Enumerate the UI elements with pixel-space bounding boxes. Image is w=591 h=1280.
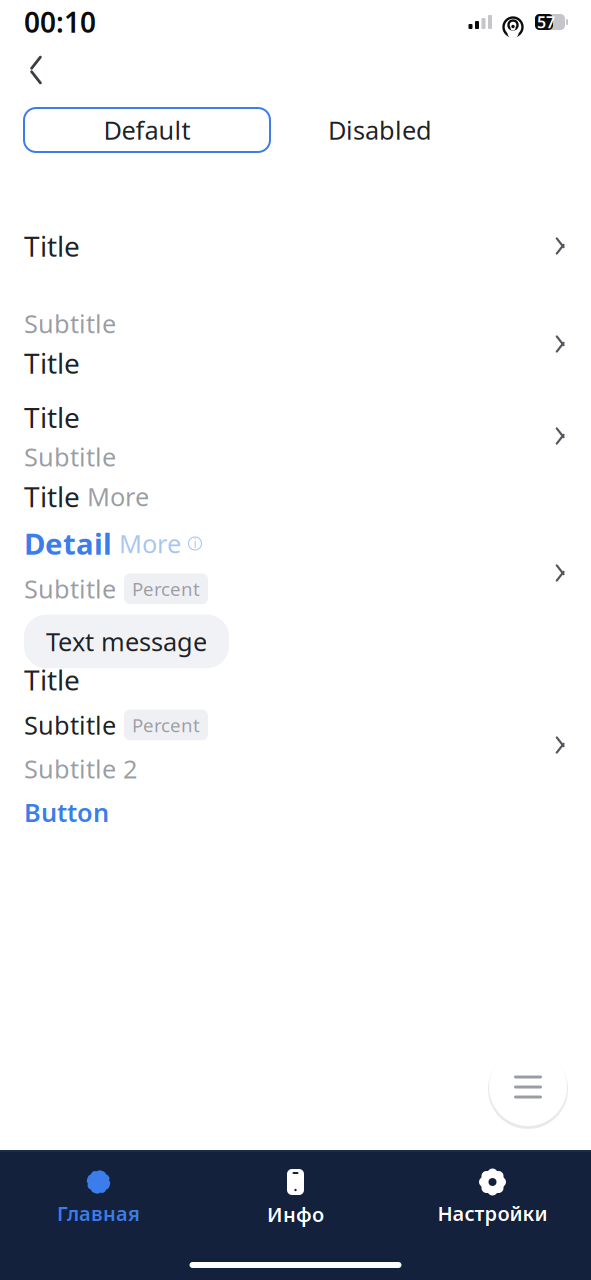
- staticText: Subtitle: [24, 572, 116, 605]
- staticText: Percent: [132, 576, 200, 601]
- staticText: Percent: [132, 713, 200, 737]
- staticText: Subtitle: [24, 440, 116, 473]
- staticText: Subtitle: [24, 708, 116, 742]
- staticText: i: [193, 535, 196, 551]
- button[interactable]: Subtitle: [0, 304, 591, 384]
- staticText: Button: [24, 795, 109, 829]
- button[interactable]: Настройки: [394, 1159, 591, 1237]
- button[interactable]: Menu: [487, 1046, 569, 1128]
- button[interactable]: Инфо: [197, 1158, 394, 1238]
- staticText: Title: [24, 399, 80, 436]
- staticText: Инфо: [267, 1201, 324, 1228]
- staticText: Title: [24, 227, 80, 265]
- staticText: Disabled: [328, 113, 432, 147]
- staticText: Главная: [57, 1200, 140, 1227]
- button[interactable]: Title: [0, 488, 591, 658]
- button[interactable]: Главная: [0, 1159, 197, 1237]
- button[interactable]: Title: [0, 670, 591, 820]
- staticText: Title: [24, 478, 80, 515]
- staticText: 57: [537, 11, 555, 33]
- staticText: 00:10: [24, 3, 96, 41]
- button[interactable]: Default: [24, 108, 270, 152]
- staticText: Text message: [46, 625, 207, 658]
- staticText: Default: [103, 113, 190, 147]
- staticText: Subtitle 2: [24, 752, 137, 785]
- staticText: Настройки: [437, 1200, 547, 1227]
- staticText: More: [87, 480, 149, 513]
- button[interactable]: Back: [14, 48, 58, 92]
- staticText: Subtitle: [24, 307, 116, 340]
- button[interactable]: Title: [0, 218, 591, 274]
- button[interactable]: Title: [0, 398, 591, 474]
- staticText: Title: [24, 344, 80, 381]
- button[interactable]: Disabled: [270, 108, 490, 152]
- staticText: Title: [24, 661, 80, 698]
- staticText: Detail: [24, 524, 112, 563]
- staticText: More: [119, 527, 181, 560]
